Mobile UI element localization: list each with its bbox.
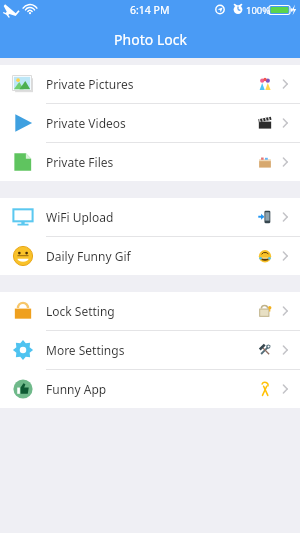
button[interactable]: Private Pictures [0, 65, 300, 103]
button[interactable]: Funny App [0, 370, 300, 408]
button[interactable]: Private Videos [0, 104, 300, 142]
staticText: 6:14 PM [130, 3, 170, 17]
button[interactable]: More Settings [0, 331, 300, 369]
staticText: Daily Funny Gif [46, 248, 131, 264]
staticText: Photo Lock [114, 30, 187, 49]
staticText: Private Files [46, 154, 114, 170]
staticText: 100% [246, 4, 271, 17]
button[interactable]: WiFi Upload [0, 198, 300, 236]
staticText: More Settings [46, 342, 125, 358]
button[interactable]: Daily Funny Gif [0, 237, 300, 275]
staticText: Private Videos [46, 115, 126, 131]
staticText: WiFi Upload [46, 209, 114, 225]
staticText: Lock Setting [46, 303, 115, 319]
button[interactable]: Private Files [0, 143, 300, 181]
button[interactable]: Lock Setting [0, 292, 300, 330]
staticText: Funny App [46, 381, 107, 397]
staticText: Private Pictures [46, 76, 134, 92]
